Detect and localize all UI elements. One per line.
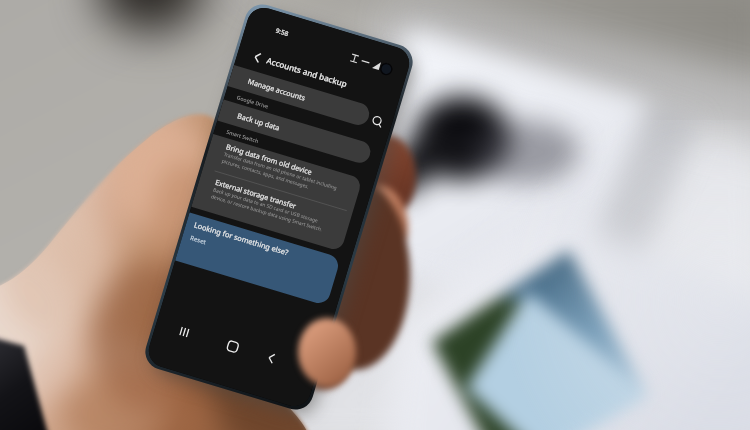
button[interactable]: Hand holding a phone showing the Account… <box>0 0 750 430</box>
